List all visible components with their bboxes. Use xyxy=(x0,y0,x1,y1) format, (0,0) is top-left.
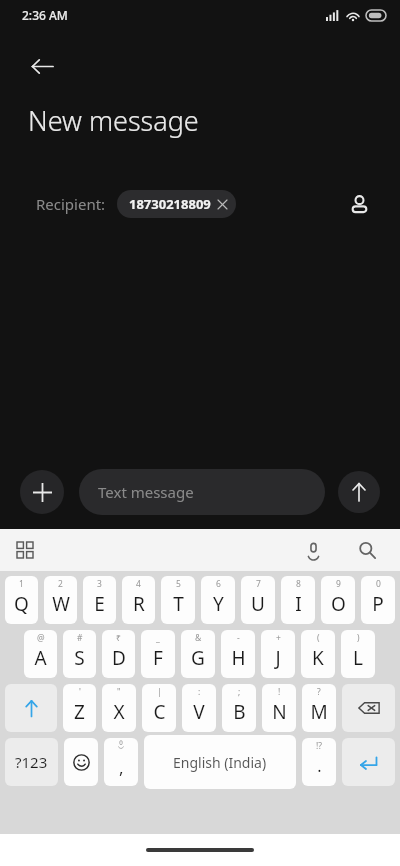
staticText: B xyxy=(233,699,246,725)
button[interactable]: ? xyxy=(302,684,336,732)
staticText: Y xyxy=(213,591,224,617)
button[interactable]: Back xyxy=(20,44,64,88)
staticText: 0 xyxy=(376,578,381,590)
staticText: G xyxy=(191,645,205,671)
button[interactable]: 9 xyxy=(321,576,355,624)
button[interactable]: " xyxy=(102,684,136,732)
staticText: H xyxy=(231,645,246,671)
button[interactable]: Attach xyxy=(20,470,64,514)
staticText: 2 xyxy=(58,578,63,590)
button[interactable]: 18730218809 xyxy=(117,190,236,218)
staticText: U xyxy=(251,591,265,617)
staticText: T xyxy=(173,591,184,617)
button[interactable]: @ xyxy=(24,630,57,678)
staticText: 6 xyxy=(216,578,221,590)
button[interactable]: Symbols xyxy=(5,738,58,786)
staticText: 18730218809 xyxy=(129,195,211,213)
button[interactable]: _ xyxy=(141,630,175,678)
button[interactable]: 4 xyxy=(122,576,155,624)
button[interactable]: : xyxy=(182,684,216,732)
staticText: New message xyxy=(28,102,199,139)
button[interactable]: Keyboard options xyxy=(8,533,42,567)
staticText: 7 xyxy=(256,578,261,590)
button[interactable]: # xyxy=(63,630,96,678)
staticText: ? xyxy=(317,686,321,698)
staticText: Z xyxy=(74,699,85,725)
staticText: N xyxy=(272,699,287,725)
staticText: - xyxy=(237,632,240,644)
staticText: D xyxy=(112,645,126,671)
staticText: E xyxy=(94,591,105,617)
button[interactable]: ) xyxy=(341,630,375,678)
staticText: ) xyxy=(357,632,360,644)
staticText: P xyxy=(372,591,384,617)
button[interactable]: Choose contact xyxy=(340,185,378,223)
staticText: O xyxy=(331,591,346,617)
button[interactable]: Enter xyxy=(342,738,395,786)
staticText: ! xyxy=(278,686,281,698)
button[interactable]: ' xyxy=(63,684,96,732)
staticText: F xyxy=(153,645,163,671)
button[interactable]: Voice input xyxy=(296,533,330,567)
button[interactable]: 1 xyxy=(5,576,38,624)
staticText: Q xyxy=(14,591,29,617)
staticText: ( xyxy=(317,632,320,644)
staticText: M xyxy=(310,699,328,725)
staticText: : xyxy=(198,686,201,698)
staticText: English (India) xyxy=(173,753,267,772)
button[interactable]: & xyxy=(181,630,215,678)
button[interactable]: 0 xyxy=(361,576,395,624)
button[interactable]: Emoji xyxy=(64,738,98,786)
staticText: 2:36 AM xyxy=(22,7,68,23)
staticText: X xyxy=(113,699,125,725)
staticText: !? xyxy=(316,740,322,752)
button[interactable]: , xyxy=(104,738,138,786)
button[interactable]: Text message xyxy=(79,469,325,515)
button[interactable]: - xyxy=(221,630,255,678)
button[interactable]: Send xyxy=(338,471,380,513)
staticText: L xyxy=(353,645,363,671)
staticText: , xyxy=(119,756,124,779)
button[interactable]: + xyxy=(261,630,295,678)
button[interactable]: 7 xyxy=(241,576,275,624)
staticText: K xyxy=(312,645,324,671)
staticText: C xyxy=(153,699,166,725)
staticText: W xyxy=(52,591,70,617)
staticText: ?123 xyxy=(15,752,48,772)
staticText: A xyxy=(34,645,47,671)
staticText: ₹ xyxy=(116,632,121,644)
button[interactable]: 6 xyxy=(201,576,235,624)
button[interactable]: Backspace xyxy=(342,684,395,732)
staticText: S xyxy=(74,645,85,671)
staticText: 4 xyxy=(136,578,141,590)
button[interactable]: ₹ xyxy=(102,630,135,678)
staticText: I xyxy=(295,591,302,617)
button[interactable]: ; xyxy=(222,684,256,732)
staticText: | xyxy=(157,686,162,698)
button[interactable]: English (India) xyxy=(144,735,296,789)
staticText: 3 xyxy=(97,578,102,590)
button[interactable]: Search xyxy=(350,533,384,567)
button[interactable]: 3 xyxy=(83,576,116,624)
button[interactable]: ! xyxy=(262,684,296,732)
staticText: _ xyxy=(156,632,160,644)
staticText: 1 xyxy=(19,578,24,590)
button[interactable]: | xyxy=(142,684,176,732)
button[interactable]: 5 xyxy=(161,576,195,624)
button[interactable]: 2 xyxy=(44,576,77,624)
button[interactable]: Shift xyxy=(5,684,57,732)
staticText: # xyxy=(77,632,83,644)
button[interactable]: 8 xyxy=(281,576,315,624)
staticText: 5 xyxy=(176,578,181,590)
button[interactable]: !? xyxy=(302,738,336,786)
staticText: V xyxy=(193,699,205,725)
staticText: J xyxy=(275,645,281,671)
staticText: " xyxy=(117,686,121,698)
staticText: 8 xyxy=(296,578,301,590)
staticText: Text message xyxy=(98,482,194,502)
staticText: & xyxy=(195,632,202,644)
button[interactable]: ( xyxy=(301,630,335,678)
staticText: R xyxy=(133,591,145,617)
staticText: Recipient: xyxy=(36,194,106,214)
staticText: ; xyxy=(238,686,241,698)
